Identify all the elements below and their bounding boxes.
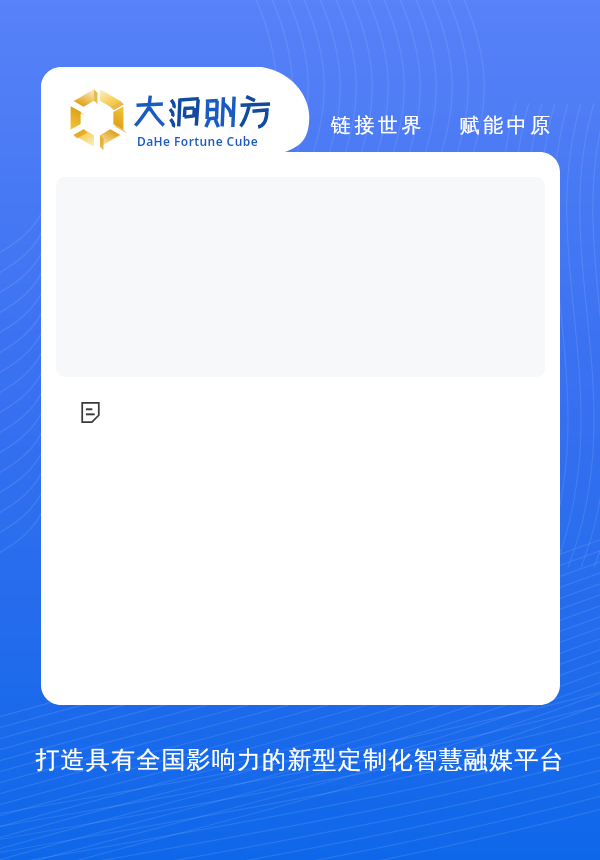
staticText: DaHe Fortune Cube	[137, 133, 259, 149]
staticText: 打造具有全国影响力的新型定制化智慧融媒平台	[0, 745, 600, 775]
button[interactable]: Document	[79, 401, 102, 424]
staticText: 链接世界 赋能中原	[331, 111, 554, 138]
button[interactable]: 链接世界 赋能中原	[331, 111, 554, 138]
button[interactable]: 大河财立方 DaHe Fortune Cube	[66, 88, 266, 150]
